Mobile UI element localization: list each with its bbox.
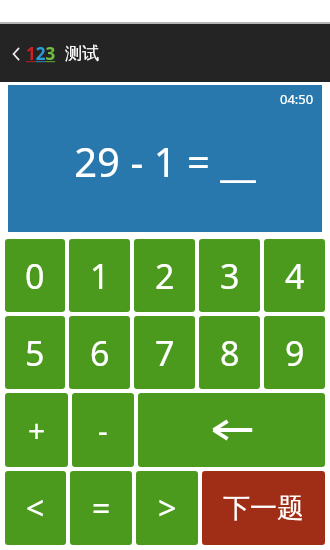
staticText: 测试: [65, 43, 99, 64]
button[interactable]: 0: [5, 239, 65, 312]
staticText: 123: [26, 42, 56, 65]
staticText: 5: [25, 330, 45, 376]
staticText: 9: [285, 330, 305, 376]
staticText: 3: [220, 253, 240, 299]
staticText: -: [98, 410, 108, 451]
button[interactable]: 下一题: [202, 471, 325, 545]
staticText: 1: [90, 253, 110, 299]
button[interactable]: Backspace: [138, 393, 325, 467]
button[interactable]: 7: [134, 316, 195, 389]
button[interactable]: 3: [199, 239, 260, 312]
button[interactable]: +: [5, 393, 68, 467]
staticText: <: [26, 486, 45, 530]
staticText: >: [158, 486, 177, 530]
staticText: 8: [220, 330, 240, 376]
button[interactable]: 1: [69, 239, 130, 312]
button[interactable]: >: [136, 471, 198, 545]
staticText: +: [28, 410, 46, 451]
staticText: 0: [25, 253, 45, 299]
staticText: 下一题: [223, 491, 304, 525]
button[interactable]: 5: [5, 316, 65, 389]
button[interactable]: 4: [264, 239, 325, 312]
button[interactable]: <: [5, 471, 66, 545]
button[interactable]: 9: [264, 316, 325, 389]
button[interactable]: -: [72, 393, 134, 467]
staticText: 4: [285, 253, 305, 299]
staticText: 6: [90, 330, 110, 376]
button[interactable]: 8: [199, 316, 260, 389]
staticText: =: [92, 486, 111, 530]
staticText: 29 - 1 = __: [8, 134, 322, 188]
staticText: 2: [155, 253, 175, 299]
button[interactable]: 123: [8, 38, 101, 69]
button[interactable]: 2: [134, 239, 195, 312]
button[interactable]: 6: [69, 316, 130, 389]
button[interactable]: =: [70, 471, 132, 545]
staticText: 04:50: [280, 90, 314, 108]
staticText: 7: [155, 330, 175, 376]
